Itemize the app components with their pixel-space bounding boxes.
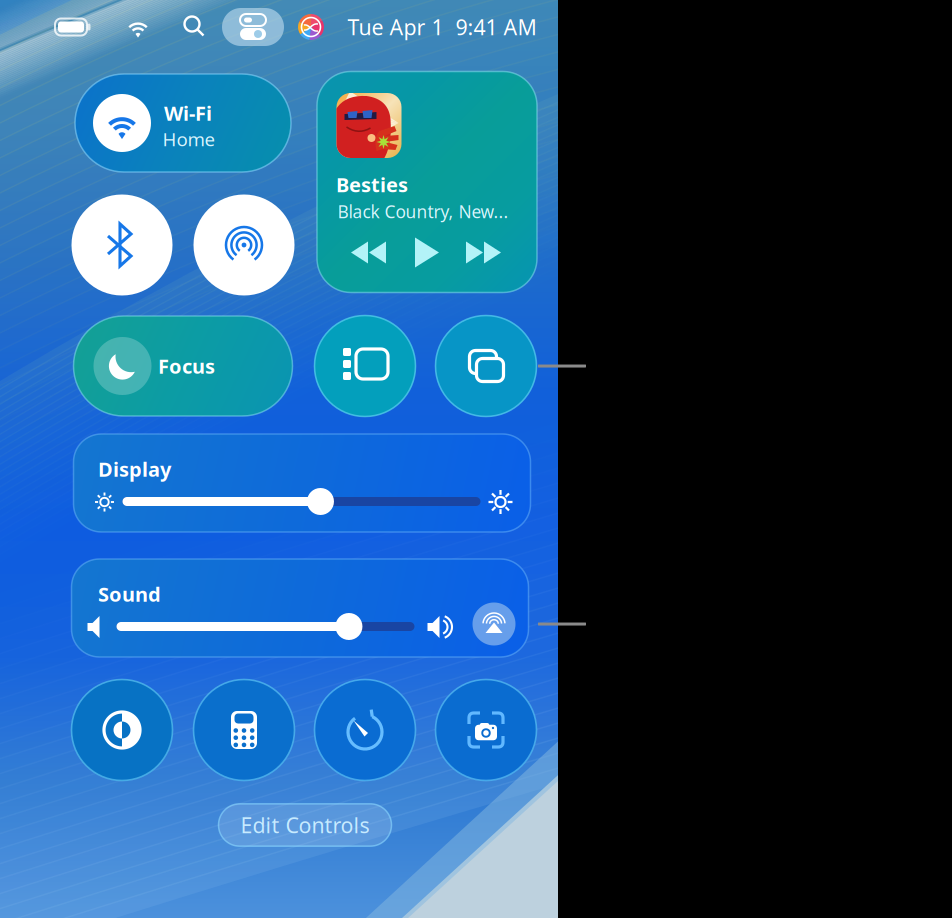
staticText: Sound [98,581,161,607]
button[interactable]: Screen Mirroring [435,315,537,417]
button[interactable]: Wi-Fi [124,15,152,38]
staticText: Tue Apr 1 9:41 AM [347,13,536,41]
button[interactable]: Calculator [193,679,295,781]
button[interactable]: AirDrop [193,194,294,295]
staticText: Wi-Fi [164,100,212,126]
button[interactable]: Clock [314,679,416,781]
button[interactable]: Now Playing, Besties [317,71,537,292]
button[interactable]: Battery [54,14,94,40]
button[interactable]: Control Center [222,8,284,46]
button[interactable]: Edit Controls [218,804,391,846]
button[interactable]: Wi-Fi, Home [75,74,291,172]
button[interactable]: Focus [73,316,292,416]
staticText: Black Country, New... [337,200,508,223]
button[interactable]: Stage Manager [314,315,416,417]
staticText: Edit Controls [240,811,369,839]
staticText: Besties [336,171,408,198]
button[interactable]: Bluetooth [71,194,172,295]
button[interactable]: Screenshot [435,679,537,781]
staticText: Display [98,456,171,482]
button[interactable]: Spotlight Search [181,13,207,39]
button[interactable]: Dark Mode [71,679,173,781]
button[interactable]: Siri [298,14,324,40]
button[interactable]: AirPlay [472,602,515,645]
staticText: Home [162,127,215,151]
staticText: Focus [158,353,215,379]
